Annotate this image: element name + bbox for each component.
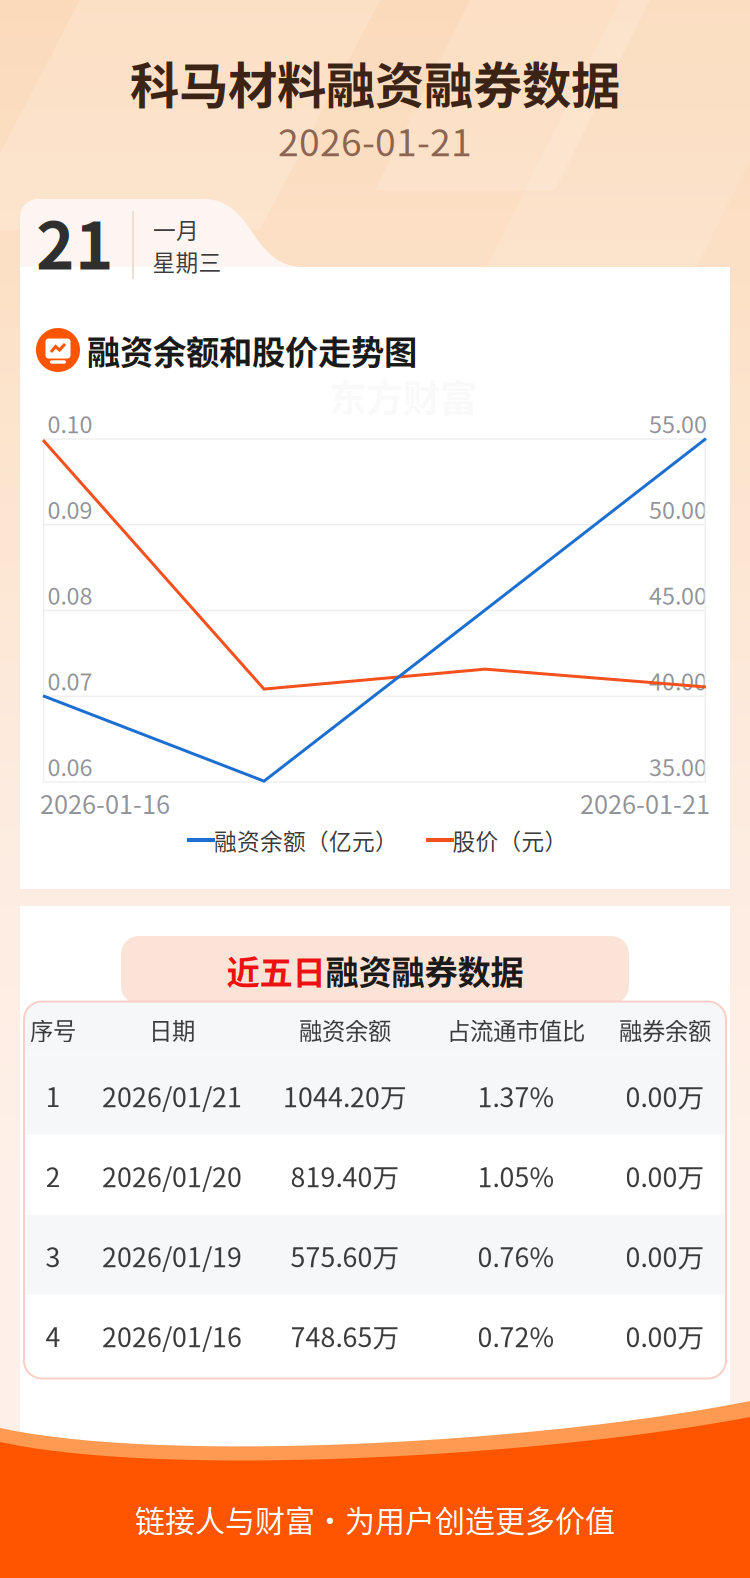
staticText: 55.00 <box>649 406 707 440</box>
staticText: 0.76% <box>477 1236 554 1275</box>
staticText: 融资融券数据 <box>325 946 523 994</box>
staticText: 45.00 <box>649 578 707 611</box>
staticText: 2026/01/16 <box>102 1316 242 1355</box>
staticText: 0.06 <box>47 749 92 783</box>
staticText: 融资余额（亿元） <box>214 824 398 856</box>
staticText: 0.09 <box>47 492 92 526</box>
staticText: 2026/01/20 <box>102 1156 242 1195</box>
staticText: 50.00 <box>649 492 707 526</box>
staticText: 1044.20万 <box>283 1076 407 1115</box>
staticText: 链接人与财富·为用户创造更多价值 <box>135 1497 615 1541</box>
staticText: 0.07 <box>47 663 92 697</box>
staticText: 748.65万 <box>290 1316 399 1355</box>
staticText: 融券余额 <box>619 1013 711 1046</box>
staticText: 一月 <box>153 213 199 245</box>
staticText: 35.00 <box>649 749 707 783</box>
staticText: 0.00万 <box>625 1076 704 1115</box>
staticText: 近五日 <box>226 946 325 994</box>
staticText: 0.08 <box>47 578 92 611</box>
staticText: 4 <box>45 1316 60 1355</box>
staticText: 占流通市值比 <box>447 1013 585 1046</box>
staticText: 0.00万 <box>625 1236 704 1275</box>
staticText: 科马材料融资融券数据 <box>130 46 620 118</box>
staticText: 0.00万 <box>625 1156 704 1195</box>
staticText: 1.37% <box>477 1076 554 1115</box>
staticText: 575.60万 <box>290 1236 399 1275</box>
staticText: 星期三 <box>152 245 221 277</box>
staticText: 日期 <box>149 1013 195 1046</box>
staticText: 2 <box>45 1156 60 1195</box>
staticText: 40.00 <box>649 663 707 697</box>
staticText: 股价（元） <box>452 824 567 856</box>
staticText: 0.72% <box>477 1316 554 1355</box>
staticText: 融资余额和股价走势图 <box>87 326 417 374</box>
staticText: 2026/01/19 <box>102 1236 242 1275</box>
staticText: 2026-01-16 <box>40 785 170 821</box>
staticText: 3 <box>45 1236 60 1275</box>
staticText: 2026-01-21 <box>580 785 710 821</box>
staticText: 序号 <box>30 1013 76 1046</box>
staticText: 1 <box>45 1076 60 1115</box>
staticText: 2026/01/21 <box>102 1076 242 1115</box>
staticText: 819.40万 <box>290 1156 399 1195</box>
staticText: 0.10 <box>47 406 92 440</box>
staticText: 21 <box>36 194 114 288</box>
staticText: 2026-01-21 <box>278 113 472 167</box>
staticText: 0.00万 <box>625 1316 704 1355</box>
staticText: 1.05% <box>477 1156 554 1195</box>
staticText: 融资余额 <box>299 1013 391 1046</box>
